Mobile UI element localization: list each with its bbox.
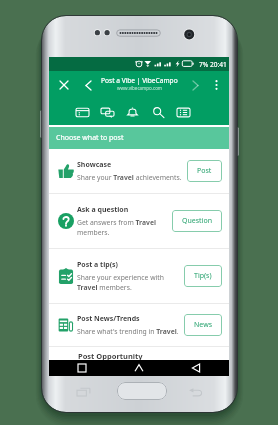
- staticText: News: [194, 320, 212, 330]
- staticText: 20:41: [210, 60, 227, 69]
- staticText: Post a tip(s): [77, 260, 118, 270]
- button[interactable]: Home: [131, 360, 147, 376]
- button[interactable]: Back: [80, 77, 96, 93]
- button[interactable]: Question: [172, 210, 222, 232]
- button[interactable]: Close: [55, 76, 73, 94]
- staticText: Showcase: [77, 160, 112, 170]
- button[interactable]: Messages: [98, 103, 116, 121]
- button[interactable]: Home button: [117, 382, 167, 400]
- button[interactable]: Feed: [73, 103, 91, 121]
- button[interactable]: Notifications: [123, 103, 141, 121]
- button[interactable]: Ask a question: [49, 194, 229, 248]
- staticText: Get answers from Travel members.: [77, 218, 157, 237]
- button[interactable]: Forward: [187, 77, 203, 93]
- staticText: Share your experience with Travel member…: [77, 273, 164, 292]
- button[interactable]: Post News/Trends: [49, 304, 229, 346]
- button[interactable]: Showcase: [49, 149, 229, 193]
- button[interactable]: More options: [208, 77, 224, 93]
- staticText: Ask a question: [77, 205, 129, 215]
- button[interactable]: Post a tip(s): [49, 249, 229, 303]
- staticText: Tip(s): [194, 271, 212, 281]
- button[interactable]: Tip(s): [184, 265, 222, 287]
- staticText: Post a Vibe | VibeCampo: [101, 76, 178, 85]
- staticText: Post: [197, 166, 212, 176]
- button[interactable]: Recents: [74, 360, 90, 376]
- button[interactable]: List: [174, 103, 192, 121]
- staticText: Question: [182, 216, 212, 226]
- button[interactable]: News: [184, 314, 222, 336]
- staticText: Share what's trending in Travel.: [77, 327, 179, 336]
- staticText: Choose what to post: [56, 133, 124, 143]
- button[interactable]: Post: [187, 160, 222, 182]
- button[interactable]: Search: [149, 103, 167, 121]
- staticText: Post Opportunity: [78, 351, 143, 360]
- staticText: Share your Travel achievements.: [77, 173, 182, 182]
- button[interactable]: Back: [188, 360, 204, 376]
- staticText: www.vibecampo.com: [117, 85, 163, 91]
- button[interactable]: Back: [189, 388, 202, 396]
- staticText: 7%: [199, 60, 209, 69]
- staticText: Post News/Trends: [77, 314, 140, 324]
- button[interactable]: Recent apps: [77, 388, 90, 396]
